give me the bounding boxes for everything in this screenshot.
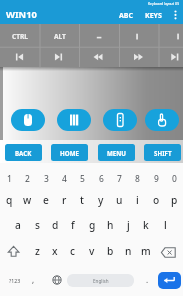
button[interactable]: English (67, 274, 134, 287)
button[interactable]: f (64, 217, 82, 233)
button[interactable] (110, 46, 146, 67)
button[interactable] (0, 24, 36, 45)
button[interactable]: i (128, 192, 146, 208)
staticText: z (35, 244, 40, 258)
staticText: h (107, 218, 114, 232)
staticText: 9 (154, 173, 159, 185)
staticText: y (98, 193, 104, 207)
button[interactable]: HOME (51, 144, 88, 161)
staticText: SHIFT (154, 149, 172, 157)
button[interactable] (73, 46, 109, 67)
button[interactable] (0, 46, 36, 67)
button[interactable]: a (9, 217, 27, 233)
button[interactable]: d (46, 217, 64, 233)
button[interactable]: m (137, 243, 155, 259)
button[interactable] (37, 46, 73, 67)
staticText: . (146, 274, 149, 285)
button[interactable]: r (55, 192, 73, 208)
button[interactable] (73, 24, 109, 45)
button[interactable] (158, 272, 181, 289)
button[interactable]: b (101, 243, 119, 259)
button[interactable] (103, 109, 137, 131)
staticText: Keyboard layout US (148, 1, 180, 6)
staticText: ALT (54, 32, 66, 41)
button[interactable]: p (165, 192, 183, 208)
button[interactable]: h (101, 217, 119, 233)
staticText: English (93, 278, 109, 284)
staticText: o (153, 193, 160, 207)
button[interactable]: q (0, 192, 18, 208)
button[interactable]: u (110, 192, 128, 208)
staticText: p (171, 193, 178, 207)
staticText: 4 (62, 173, 67, 185)
button[interactable] (5, 243, 23, 260)
button[interactable]: s (28, 217, 46, 233)
staticText: s (35, 218, 40, 232)
button[interactable]: o (147, 192, 165, 208)
staticText: u (116, 193, 123, 207)
button[interactable]: , (18, 272, 48, 286)
button[interactable] (11, 109, 45, 131)
button[interactable] (146, 46, 182, 67)
button[interactable]: 0 (165, 172, 183, 186)
button[interactable]: WIN10 (0, 7, 43, 21)
staticText: v (89, 244, 95, 258)
button[interactable]: KEYS (138, 9, 168, 23)
staticText: 3 (44, 173, 49, 185)
staticText: 7 (117, 173, 122, 185)
button[interactable]: k (137, 217, 155, 233)
button[interactable]: x (46, 243, 64, 259)
button[interactable]: y (92, 192, 110, 208)
button[interactable]: 7 (110, 172, 128, 186)
staticText: KEYS (145, 11, 162, 21)
button[interactable]: 1 (0, 172, 18, 186)
button[interactable]: t (73, 192, 91, 208)
staticText: k (143, 218, 149, 232)
staticText: x (52, 244, 58, 258)
button[interactable]: MENU (98, 144, 135, 161)
button[interactable] (170, 8, 181, 22)
staticText: d (52, 218, 59, 232)
button[interactable]: j (119, 217, 137, 233)
button[interactable]: 9 (147, 172, 165, 186)
button[interactable]: 5 (73, 172, 91, 186)
button[interactable] (37, 24, 73, 45)
staticText: b (107, 244, 114, 258)
staticText: WIN10 (6, 8, 37, 21)
button[interactable] (57, 109, 91, 131)
staticText: r (62, 193, 67, 207)
button[interactable] (110, 24, 146, 45)
button[interactable]: 8 (128, 172, 146, 186)
staticText: CTRL (12, 32, 29, 41)
button[interactable]: 6 (92, 172, 110, 186)
staticText: , (32, 274, 35, 285)
button[interactable] (160, 246, 178, 260)
button[interactable]: z (28, 243, 46, 259)
button[interactable]: SHIFT (144, 144, 181, 161)
staticText: q (6, 193, 13, 207)
button[interactable]: w (18, 192, 36, 208)
staticText: ABC (119, 11, 133, 21)
button[interactable] (0, 67, 183, 140)
button[interactable]: c (64, 243, 82, 259)
staticText: ?123 (9, 277, 21, 284)
staticText: i (136, 193, 139, 207)
button[interactable]: g (83, 217, 101, 233)
button[interactable]: ABC (111, 9, 141, 23)
button[interactable]: n (119, 243, 137, 259)
button[interactable] (145, 109, 179, 131)
button[interactable]: 3 (37, 172, 55, 186)
button[interactable]: v (83, 243, 101, 259)
button[interactable]: e (37, 192, 55, 208)
button[interactable]: . (132, 272, 162, 286)
staticText: c (70, 244, 76, 258)
button[interactable]: 4 (55, 172, 73, 186)
staticText: 0 (172, 173, 177, 185)
button[interactable] (51, 274, 63, 286)
staticText: HOME (60, 149, 79, 157)
button[interactable] (146, 24, 182, 45)
button[interactable]: BACK (5, 144, 42, 161)
button[interactable]: l (156, 217, 174, 233)
button[interactable]: ?123 (0, 273, 30, 287)
button[interactable]: 2 (18, 172, 36, 186)
